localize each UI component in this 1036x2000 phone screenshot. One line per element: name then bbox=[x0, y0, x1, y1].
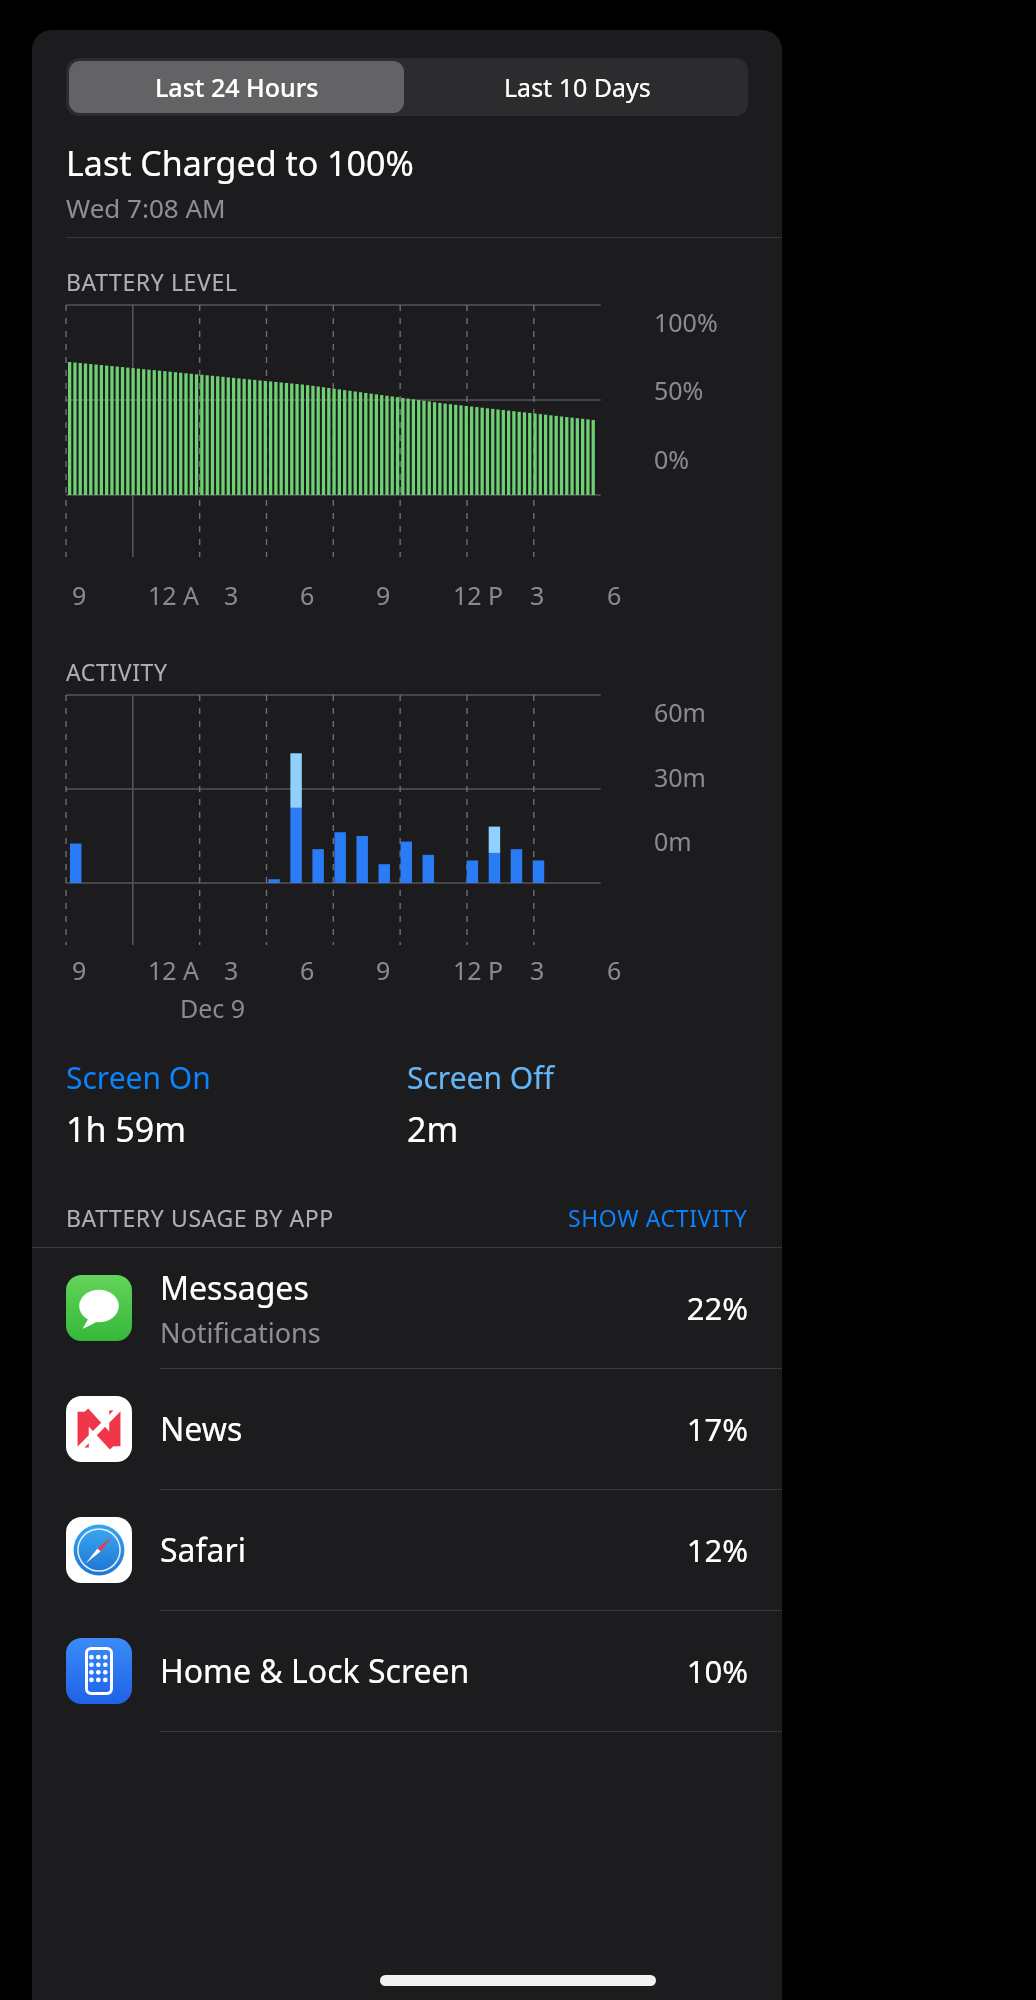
button[interactable]: SHOW ACTIVITY bbox=[568, 1202, 748, 1233]
staticText: 2m bbox=[407, 1106, 459, 1152]
staticText: Dec 9 bbox=[180, 991, 246, 1025]
staticText: Last Charged to 100% bbox=[66, 140, 414, 186]
staticText: 10% bbox=[686, 1650, 748, 1692]
button[interactable]: Last 24 Hours bbox=[69, 61, 404, 113]
staticText: 100% bbox=[654, 305, 718, 339]
staticText: 6 bbox=[300, 953, 315, 987]
staticText: 9 bbox=[72, 953, 87, 987]
staticText: 3 bbox=[530, 578, 545, 612]
staticText: News bbox=[160, 1407, 243, 1451]
staticText: 9 bbox=[376, 578, 391, 612]
staticText: 50% bbox=[654, 373, 704, 407]
staticText: 6 bbox=[607, 578, 622, 612]
staticText: Notifications bbox=[160, 1314, 321, 1351]
staticText: BATTERY LEVEL bbox=[66, 266, 238, 297]
staticText: 3 bbox=[224, 578, 239, 612]
staticText: Last 10 Days bbox=[504, 70, 651, 104]
staticText: 3 bbox=[224, 953, 239, 987]
staticText: 9 bbox=[376, 953, 391, 987]
staticText: 17% bbox=[686, 1408, 748, 1450]
staticText: Last 24 Hours bbox=[155, 70, 319, 104]
staticText: BATTERY USAGE BY APP bbox=[66, 1202, 568, 1233]
staticText: Safari bbox=[160, 1528, 246, 1572]
staticText: Wed 7:08 AM bbox=[66, 190, 226, 225]
staticText: 22% bbox=[686, 1287, 748, 1329]
staticText: SHOW ACTIVITY bbox=[568, 1202, 748, 1233]
button[interactable]: Safari bbox=[32, 1490, 782, 1610]
button[interactable]: Last 10 Days bbox=[407, 58, 748, 116]
staticText: 0m bbox=[654, 824, 692, 858]
staticText: 30m bbox=[654, 760, 706, 794]
staticText: Home & Lock Screen bbox=[160, 1649, 470, 1693]
staticText: 1h 59m bbox=[66, 1106, 186, 1152]
staticText: 12 P bbox=[453, 578, 504, 612]
button[interactable]: Messages bbox=[32, 1248, 782, 1368]
staticText: 12% bbox=[686, 1529, 748, 1571]
button[interactable]: Home & Lock Screen bbox=[32, 1611, 782, 1731]
staticText: 9 bbox=[72, 578, 87, 612]
button[interactable]: News bbox=[32, 1369, 782, 1489]
staticText: ACTIVITY bbox=[66, 656, 168, 687]
staticText: Screen Off bbox=[407, 1057, 554, 1098]
staticText: 12 A bbox=[148, 578, 200, 612]
staticText: 6 bbox=[607, 953, 622, 987]
staticText: 60m bbox=[654, 695, 706, 729]
staticText: 6 bbox=[300, 578, 315, 612]
staticText: 3 bbox=[530, 953, 545, 987]
staticText: Screen On bbox=[66, 1057, 211, 1098]
staticText: Messages bbox=[160, 1266, 309, 1310]
staticText: 0% bbox=[654, 442, 690, 476]
staticText: 12 A bbox=[148, 953, 200, 987]
staticText: 12 P bbox=[453, 953, 504, 987]
